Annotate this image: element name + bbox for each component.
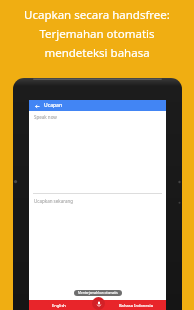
staticText: Terjemahan otomatis <box>39 26 155 42</box>
button[interactable]: English <box>29 300 88 310</box>
button[interactable]: Speak now <box>29 111 166 193</box>
button[interactable]: Bahasa Indonesia <box>106 300 166 310</box>
button[interactable]: Ucapkan sekarang <box>29 194 166 300</box>
staticText: Ucapan <box>44 102 63 109</box>
staticText: Ucapkan secara handsfree: <box>24 7 170 23</box>
staticText: English <box>52 303 66 308</box>
button[interactable]: Microphone <box>92 297 105 310</box>
staticText: Ucapkan sekarang <box>34 198 74 204</box>
staticText: Bahasa Indonesia <box>119 303 153 308</box>
button[interactable]: Back <box>29 100 166 111</box>
staticText: Menterjemahkan otomatis <box>78 291 118 295</box>
staticText: mendeteksi bahasa <box>44 45 150 61</box>
staticText: Speak now <box>34 114 57 120</box>
button[interactable]: Back <box>33 102 41 110</box>
